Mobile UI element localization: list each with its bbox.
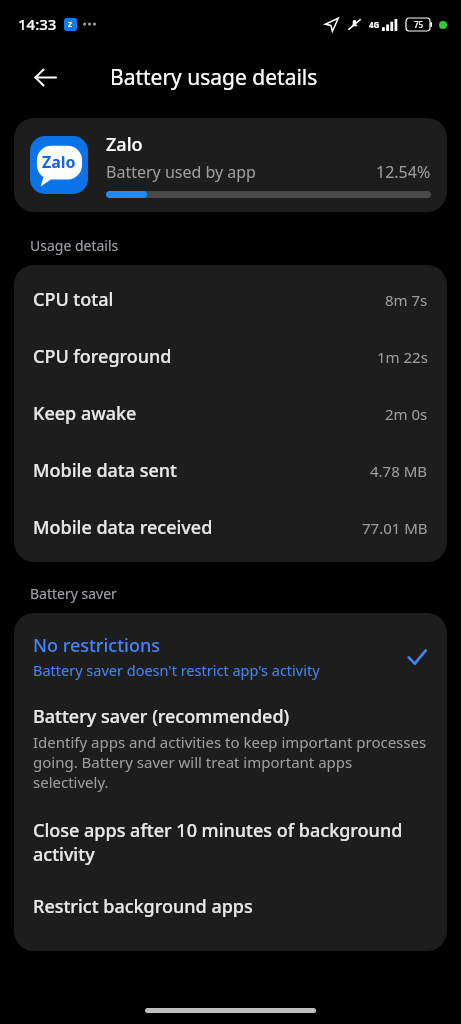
staticText: CPU total xyxy=(33,287,385,312)
staticText: 2m 0s xyxy=(385,404,428,424)
staticText: Mobile data received xyxy=(33,515,362,540)
staticText: 8m 7s xyxy=(385,290,428,310)
staticText: Usage details xyxy=(30,236,119,255)
staticText: Zalo xyxy=(106,132,143,157)
staticText: Battery saver doesn't restrict app's act… xyxy=(33,660,320,680)
button[interactable]: Zalo xyxy=(14,118,447,212)
button[interactable]: Keep awake xyxy=(14,385,447,442)
staticText: 77.01 MB xyxy=(362,518,428,538)
staticText: Zalo xyxy=(42,151,76,173)
button[interactable]: No restrictions xyxy=(14,621,447,692)
staticText: Restrict background apps xyxy=(33,894,253,919)
button[interactable]: Battery saver (recommended) xyxy=(14,692,447,804)
button[interactable]: Mobile data sent xyxy=(14,442,447,499)
button[interactable]: Close apps after 10 minutes of backgroun… xyxy=(14,804,447,880)
staticText: 1m 22s xyxy=(377,347,428,367)
staticText: Close apps after 10 minutes of backgroun… xyxy=(33,818,428,866)
button[interactable]: CPU foreground xyxy=(14,328,447,385)
staticText: 14:33 xyxy=(18,14,57,34)
button[interactable]: Back xyxy=(22,54,68,100)
button[interactable]: CPU total xyxy=(14,271,447,328)
staticText: Battery saver xyxy=(30,584,117,603)
staticText: Battery used by app xyxy=(106,161,376,183)
staticText: 75 xyxy=(414,19,424,30)
staticText: No restrictions xyxy=(33,633,160,658)
staticText: Z xyxy=(68,20,73,30)
staticText: Battery usage details xyxy=(110,63,318,92)
staticText: CPU foreground xyxy=(33,344,377,369)
staticText: 4.78 MB xyxy=(370,461,428,481)
button[interactable]: Restrict background apps xyxy=(14,880,447,933)
staticText: Identify apps and activities to keep imp… xyxy=(33,732,428,792)
staticText: 12.54% xyxy=(376,161,431,183)
button[interactable]: Mobile data received xyxy=(14,499,447,556)
staticText: Battery saver (recommended) xyxy=(33,704,290,729)
staticText: Keep awake xyxy=(33,401,385,426)
staticText: 4G xyxy=(369,19,380,30)
staticText: Mobile data sent xyxy=(33,458,370,483)
